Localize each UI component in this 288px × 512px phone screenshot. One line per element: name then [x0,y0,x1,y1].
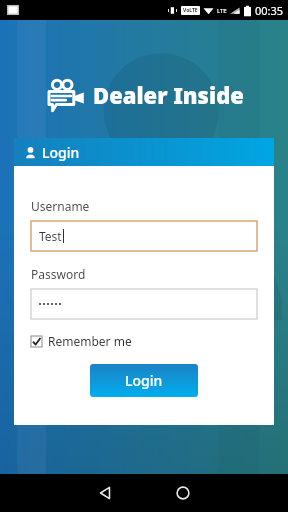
button[interactable]: Home [161,474,205,512]
staticText: Login [125,371,163,390]
staticText: Remember me [48,333,132,349]
button[interactable]: Back [83,474,127,512]
staticText: 00:35 [255,3,284,18]
staticText: Dealer Inside [93,80,244,110]
staticText: LTE [217,7,227,15]
button[interactable] [31,289,257,319]
staticText: Login [42,143,80,162]
button[interactable]: Remember me [31,331,132,351]
button[interactable]: Login [90,364,198,397]
staticText: Username [31,198,90,214]
staticText: Test [39,228,62,244]
staticText: VoLTE [183,7,198,14]
button[interactable]: Test [31,221,257,251]
staticText: Password [31,266,86,282]
